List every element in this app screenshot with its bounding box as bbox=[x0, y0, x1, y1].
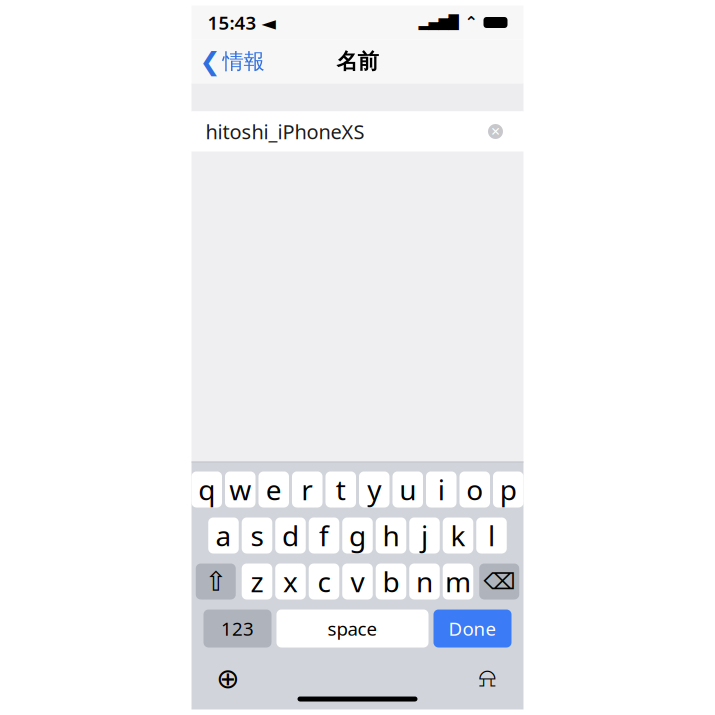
button[interactable]: t bbox=[325, 471, 356, 507]
staticText: Done bbox=[448, 616, 496, 641]
button[interactable]: Done bbox=[433, 609, 511, 647]
button[interactable]: d bbox=[275, 517, 306, 553]
button[interactable]: v bbox=[342, 563, 373, 599]
button[interactable]: x bbox=[275, 563, 306, 599]
button[interactable]: k bbox=[443, 517, 473, 553]
button[interactable]: l bbox=[476, 517, 507, 553]
staticText: n bbox=[416, 563, 433, 600]
staticText: o bbox=[466, 471, 483, 508]
button[interactable]: r bbox=[292, 471, 322, 507]
staticText: 名前 bbox=[336, 48, 378, 75]
staticText: t bbox=[336, 471, 346, 508]
staticText: 123 bbox=[221, 616, 254, 641]
staticText: j bbox=[421, 517, 428, 554]
button[interactable]: m bbox=[443, 563, 473, 599]
button[interactable]: 123 bbox=[203, 609, 271, 647]
button[interactable]: w bbox=[225, 471, 255, 507]
staticText: v bbox=[350, 563, 364, 600]
button[interactable]: j bbox=[409, 517, 440, 553]
button[interactable]: q bbox=[191, 471, 222, 507]
staticText: 情報 bbox=[222, 48, 264, 75]
button[interactable]: e bbox=[258, 471, 289, 507]
staticText: b bbox=[382, 563, 399, 600]
staticText: space bbox=[327, 616, 377, 641]
button[interactable]: ❮ bbox=[191, 40, 272, 82]
staticText: ✕ bbox=[490, 125, 500, 138]
button[interactable]: f bbox=[309, 517, 339, 553]
staticText: l bbox=[488, 517, 495, 554]
button[interactable]: space bbox=[276, 609, 428, 647]
staticText: ❮ bbox=[199, 47, 220, 76]
staticText: d bbox=[282, 517, 299, 554]
button[interactable]: n bbox=[409, 563, 440, 599]
staticText: x bbox=[283, 563, 298, 600]
staticText: ⍾ bbox=[478, 665, 496, 691]
staticText: k bbox=[450, 517, 465, 554]
staticText: ⌫ bbox=[483, 569, 515, 594]
staticText: ⇧ bbox=[205, 566, 227, 597]
staticText: r bbox=[301, 471, 313, 508]
staticText: f bbox=[319, 517, 329, 554]
staticText: s bbox=[250, 517, 263, 554]
button[interactable]: Dictation bbox=[465, 658, 509, 698]
staticText: u bbox=[399, 471, 416, 508]
staticText: q bbox=[198, 471, 215, 508]
staticText: ▂▄▆█ bbox=[418, 15, 458, 30]
staticText: c bbox=[317, 563, 330, 600]
button[interactable]: Delete bbox=[479, 563, 519, 599]
button[interactable]: i bbox=[426, 471, 456, 507]
staticText: g bbox=[349, 517, 366, 554]
button[interactable]: o bbox=[459, 471, 490, 507]
staticText: ⌃ bbox=[458, 13, 483, 32]
staticText: m bbox=[445, 563, 471, 600]
button[interactable]: s bbox=[242, 517, 272, 553]
staticText: h bbox=[382, 517, 399, 554]
button[interactable]: y bbox=[359, 471, 389, 507]
button[interactable]: c bbox=[309, 563, 339, 599]
button[interactable]: p bbox=[493, 471, 523, 507]
button[interactable]: Clear text bbox=[481, 117, 509, 145]
staticText: p bbox=[500, 471, 517, 508]
staticText: a bbox=[215, 517, 231, 554]
button[interactable]: a bbox=[208, 517, 239, 553]
staticText: hitoshi_iPhoneXS bbox=[205, 118, 364, 145]
button[interactable]: g bbox=[342, 517, 373, 553]
button[interactable]: Shift bbox=[196, 563, 236, 599]
button[interactable]: z bbox=[242, 563, 272, 599]
staticText: i bbox=[438, 471, 445, 508]
button[interactable]: u bbox=[392, 471, 423, 507]
button[interactable]: b bbox=[376, 563, 406, 599]
staticText: ⊕ bbox=[216, 663, 239, 694]
staticText: w bbox=[229, 471, 251, 508]
staticText: z bbox=[250, 563, 263, 600]
staticText: y bbox=[367, 471, 381, 508]
button[interactable]: Change keyboard bbox=[205, 658, 249, 698]
button[interactable]: h bbox=[376, 517, 406, 553]
staticText: e bbox=[266, 471, 282, 508]
staticText: 15:43 ◄ bbox=[207, 10, 275, 35]
